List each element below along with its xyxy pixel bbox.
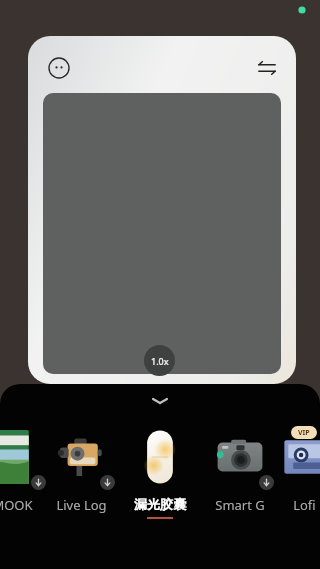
button[interactable]: Download Smart G — [202, 426, 278, 531]
button[interactable]: 1.0x — [144, 345, 175, 376]
staticText: Live Log — [56, 496, 107, 514]
staticText: 1.0x — [151, 355, 169, 367]
button[interactable]: Download Live Log — [43, 426, 119, 531]
other: Download MOOK — [31, 475, 46, 490]
staticText: VIP — [298, 428, 310, 438]
button[interactable]: Filter options — [48, 57, 70, 79]
staticText: Smart G — [215, 496, 265, 514]
other: Download Live Log — [100, 475, 115, 490]
button[interactable]: 漏光胶囊 — [122, 426, 198, 531]
button[interactable] — [43, 93, 281, 374]
button[interactable]: Download MOOK — [0, 426, 50, 531]
staticText: MOOK — [0, 496, 33, 514]
staticText: Lofi L — [293, 496, 320, 514]
button[interactable]: Download Lofi L — [271, 426, 320, 531]
other: Download Smart G — [259, 475, 274, 490]
staticText: 漏光胶囊 — [134, 496, 186, 512]
button[interactable]: Switch camera — [256, 57, 278, 79]
button[interactable]: Collapse — [140, 391, 180, 411]
